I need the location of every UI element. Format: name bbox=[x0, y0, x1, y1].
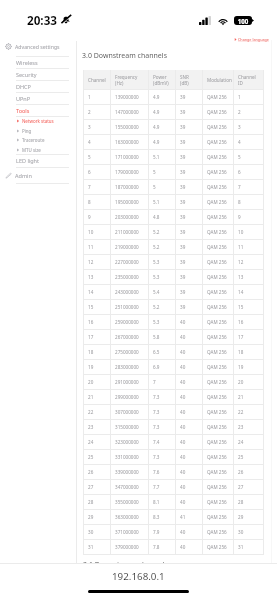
staticText: 39 bbox=[180, 94, 186, 100]
button[interactable]: DHCP bbox=[0, 80, 76, 92]
staticText: 4 bbox=[238, 139, 241, 145]
staticText: 20 bbox=[238, 379, 244, 385]
staticText: 163000000 bbox=[115, 139, 139, 145]
staticText: QAM 256 bbox=[207, 139, 227, 145]
staticText: 13 bbox=[88, 274, 94, 280]
staticText: 16 bbox=[88, 319, 94, 325]
staticText: SNR (dB) bbox=[180, 74, 189, 86]
staticText: QAM 256 bbox=[207, 349, 227, 355]
staticText: 203000000 bbox=[115, 214, 139, 220]
staticText: 13 bbox=[238, 274, 244, 280]
staticText: Ping bbox=[22, 128, 32, 134]
staticText: 5 bbox=[238, 154, 241, 160]
staticText: QAM 256 bbox=[207, 124, 227, 130]
staticText: 355000000 bbox=[115, 499, 139, 505]
staticText: QAM 256 bbox=[207, 544, 227, 550]
staticText: QAM 256 bbox=[207, 154, 227, 160]
staticText: QAM 256 bbox=[207, 274, 227, 280]
staticText: 4.9 bbox=[153, 109, 160, 115]
staticText: 39 bbox=[180, 274, 186, 280]
staticText: 243000000 bbox=[115, 289, 139, 295]
staticText: 39 bbox=[180, 199, 186, 205]
staticText: 331000000 bbox=[115, 454, 139, 460]
staticText: 17 bbox=[238, 334, 244, 340]
staticText: 21 bbox=[238, 394, 244, 400]
button[interactable]: Admin bbox=[0, 167, 76, 183]
staticText: 39 bbox=[180, 289, 186, 295]
staticText: 15 bbox=[88, 304, 94, 310]
staticText: 23 bbox=[238, 424, 244, 430]
staticText: 5.2 bbox=[153, 244, 160, 250]
staticText: 39 bbox=[180, 214, 186, 220]
button[interactable]: Tools bbox=[0, 104, 76, 116]
staticText: 323000000 bbox=[115, 439, 139, 445]
staticText: 40 bbox=[180, 529, 186, 535]
staticText: 315000000 bbox=[115, 424, 139, 430]
staticText: QAM 256 bbox=[207, 454, 227, 460]
staticText: 17 bbox=[88, 334, 94, 340]
staticText: Channel bbox=[88, 77, 106, 83]
staticText: 5.3 bbox=[153, 319, 160, 325]
staticText: 40 bbox=[180, 439, 186, 445]
staticText: 40 bbox=[180, 349, 186, 355]
staticText: 5.2 bbox=[153, 229, 160, 235]
staticText: 19 bbox=[238, 364, 244, 370]
staticText: 7.8 bbox=[153, 544, 160, 550]
staticText: 5.3 bbox=[153, 274, 160, 280]
button[interactable]: Network status bbox=[0, 116, 76, 126]
staticText: QAM 256 bbox=[207, 469, 227, 475]
staticText: 100 bbox=[234, 17, 252, 25]
button[interactable]: Security bbox=[0, 68, 76, 80]
staticText: 267000000 bbox=[115, 334, 139, 340]
staticText: 18 bbox=[88, 349, 94, 355]
staticText: 283000000 bbox=[115, 364, 139, 370]
staticText: 363000000 bbox=[115, 514, 139, 520]
staticText: 29 bbox=[238, 514, 244, 520]
staticText: QAM 256 bbox=[207, 214, 227, 220]
staticText: 227000000 bbox=[115, 259, 139, 265]
staticText: QAM 256 bbox=[207, 94, 227, 100]
staticText: QAM 256 bbox=[207, 499, 227, 505]
button[interactable]: Wireless bbox=[0, 56, 76, 68]
staticText: Change language bbox=[238, 37, 269, 42]
button[interactable]: LED light bbox=[0, 154, 76, 167]
staticText: 7.3 bbox=[153, 409, 160, 415]
staticText: QAM 256 bbox=[207, 169, 227, 175]
staticText: 40 bbox=[180, 334, 186, 340]
staticText: 39 bbox=[180, 109, 186, 115]
staticText: 3.0 Downstream channels bbox=[82, 51, 167, 61]
staticText: Network status bbox=[22, 118, 54, 124]
staticText: 9 bbox=[238, 214, 241, 220]
staticText: 39 bbox=[180, 244, 186, 250]
staticText: 40 bbox=[180, 394, 186, 400]
button[interactable]: Advanced settings bbox=[0, 36, 76, 56]
staticText: 2 bbox=[238, 109, 241, 115]
staticText: Power (dBmV) bbox=[153, 74, 169, 86]
staticText: QAM 256 bbox=[207, 484, 227, 490]
staticText: QAM 256 bbox=[207, 109, 227, 115]
staticText: 25 bbox=[88, 454, 94, 460]
staticText: 379000000 bbox=[115, 544, 139, 550]
button[interactable]: Traceroute bbox=[0, 135, 76, 145]
staticText: 251000000 bbox=[115, 304, 139, 310]
staticText: 299000000 bbox=[115, 394, 139, 400]
staticText: 187000000 bbox=[115, 184, 139, 190]
button[interactable]: UPnP bbox=[0, 92, 76, 104]
staticText: QAM 256 bbox=[207, 364, 227, 370]
staticText: Tools bbox=[16, 107, 30, 114]
staticText: 192.168.0.1 bbox=[112, 570, 165, 583]
staticText: QAM 256 bbox=[207, 319, 227, 325]
staticText: 10 bbox=[88, 229, 94, 235]
button[interactable]: Ping bbox=[0, 126, 76, 136]
staticText: 371000000 bbox=[115, 529, 139, 535]
staticText: 5 bbox=[153, 169, 156, 175]
button[interactable]: MTU size bbox=[0, 145, 76, 155]
staticText: 12 bbox=[238, 259, 244, 265]
staticText: 39 bbox=[180, 154, 186, 160]
button[interactable]: 192.168.0.1 bbox=[0, 564, 277, 588]
staticText: MTU size bbox=[22, 147, 41, 153]
staticText: 5.1 bbox=[153, 199, 160, 205]
staticText: 16 bbox=[238, 319, 244, 325]
button[interactable]: Change language bbox=[234, 37, 277, 42]
staticText: 5.1 bbox=[153, 154, 160, 160]
